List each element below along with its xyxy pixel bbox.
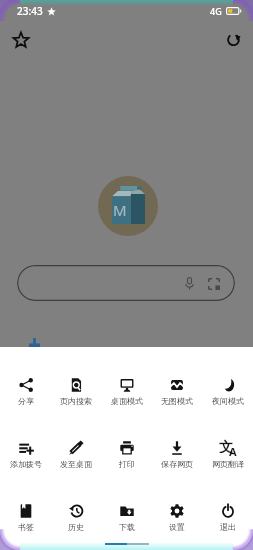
staticText: 无图模式	[161, 396, 193, 406]
staticText: 文	[219, 439, 233, 453]
button[interactable]: 退出	[203, 502, 253, 534]
button[interactable]: 页内搜索	[51, 376, 101, 408]
button[interactable]: 打印	[102, 439, 152, 471]
staticText: 下载	[119, 522, 135, 532]
button[interactable]: 无图模式	[152, 376, 202, 408]
button[interactable]: 文	[203, 439, 253, 471]
staticText: 添加拨号	[10, 459, 42, 469]
staticText: A	[229, 444, 237, 458]
button[interactable]: 夜间模式	[203, 376, 253, 408]
staticText: 分享	[18, 396, 34, 406]
staticText: 23:43	[17, 4, 43, 18]
button[interactable]: 书签	[1, 502, 51, 534]
button[interactable]	[17, 265, 235, 301]
staticText: 保存网页	[161, 459, 193, 469]
button[interactable]: Refresh	[220, 26, 247, 53]
staticText: 页内搜索	[60, 396, 92, 406]
staticText: 打印	[119, 459, 135, 469]
staticText: M	[113, 200, 127, 220]
staticText: 书签	[18, 522, 34, 532]
button[interactable]: 发至桌面	[51, 439, 101, 471]
staticText: 4G	[210, 5, 222, 17]
staticText: 发至桌面	[60, 459, 92, 469]
button[interactable]: 桌面模式	[102, 376, 152, 408]
button[interactable]: 保存网页	[152, 439, 202, 471]
button[interactable]: 设置	[152, 502, 202, 534]
staticText: 夜间模式	[212, 396, 244, 406]
button[interactable]: 历史	[51, 502, 101, 534]
button[interactable]: 下载	[102, 502, 152, 534]
staticText: 桌面模式	[111, 396, 143, 406]
button[interactable]: 添加拨号	[1, 439, 51, 471]
button[interactable]: 分享	[1, 376, 51, 408]
staticText: 设置	[169, 522, 185, 532]
staticText: 网页翻译	[212, 459, 244, 469]
staticText: 退出	[220, 522, 236, 532]
button[interactable]: Bookmark	[7, 26, 34, 53]
staticText: 历史	[68, 522, 84, 532]
